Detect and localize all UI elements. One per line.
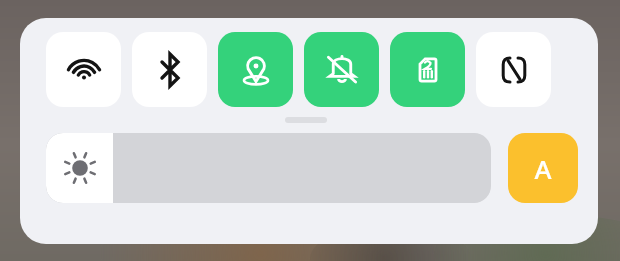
button[interactable]: Bluetooth [132,32,207,107]
button[interactable]: A [508,133,578,203]
button[interactable]: Wi-Fi [46,32,121,107]
button[interactable]: Silent mode [304,32,379,107]
button[interactable]: Location [218,32,293,107]
staticText: A [534,151,552,186]
button[interactable]: Brightness [46,133,491,203]
button[interactable]: SIM 2 [390,32,465,107]
button[interactable]: NFC [476,32,551,107]
